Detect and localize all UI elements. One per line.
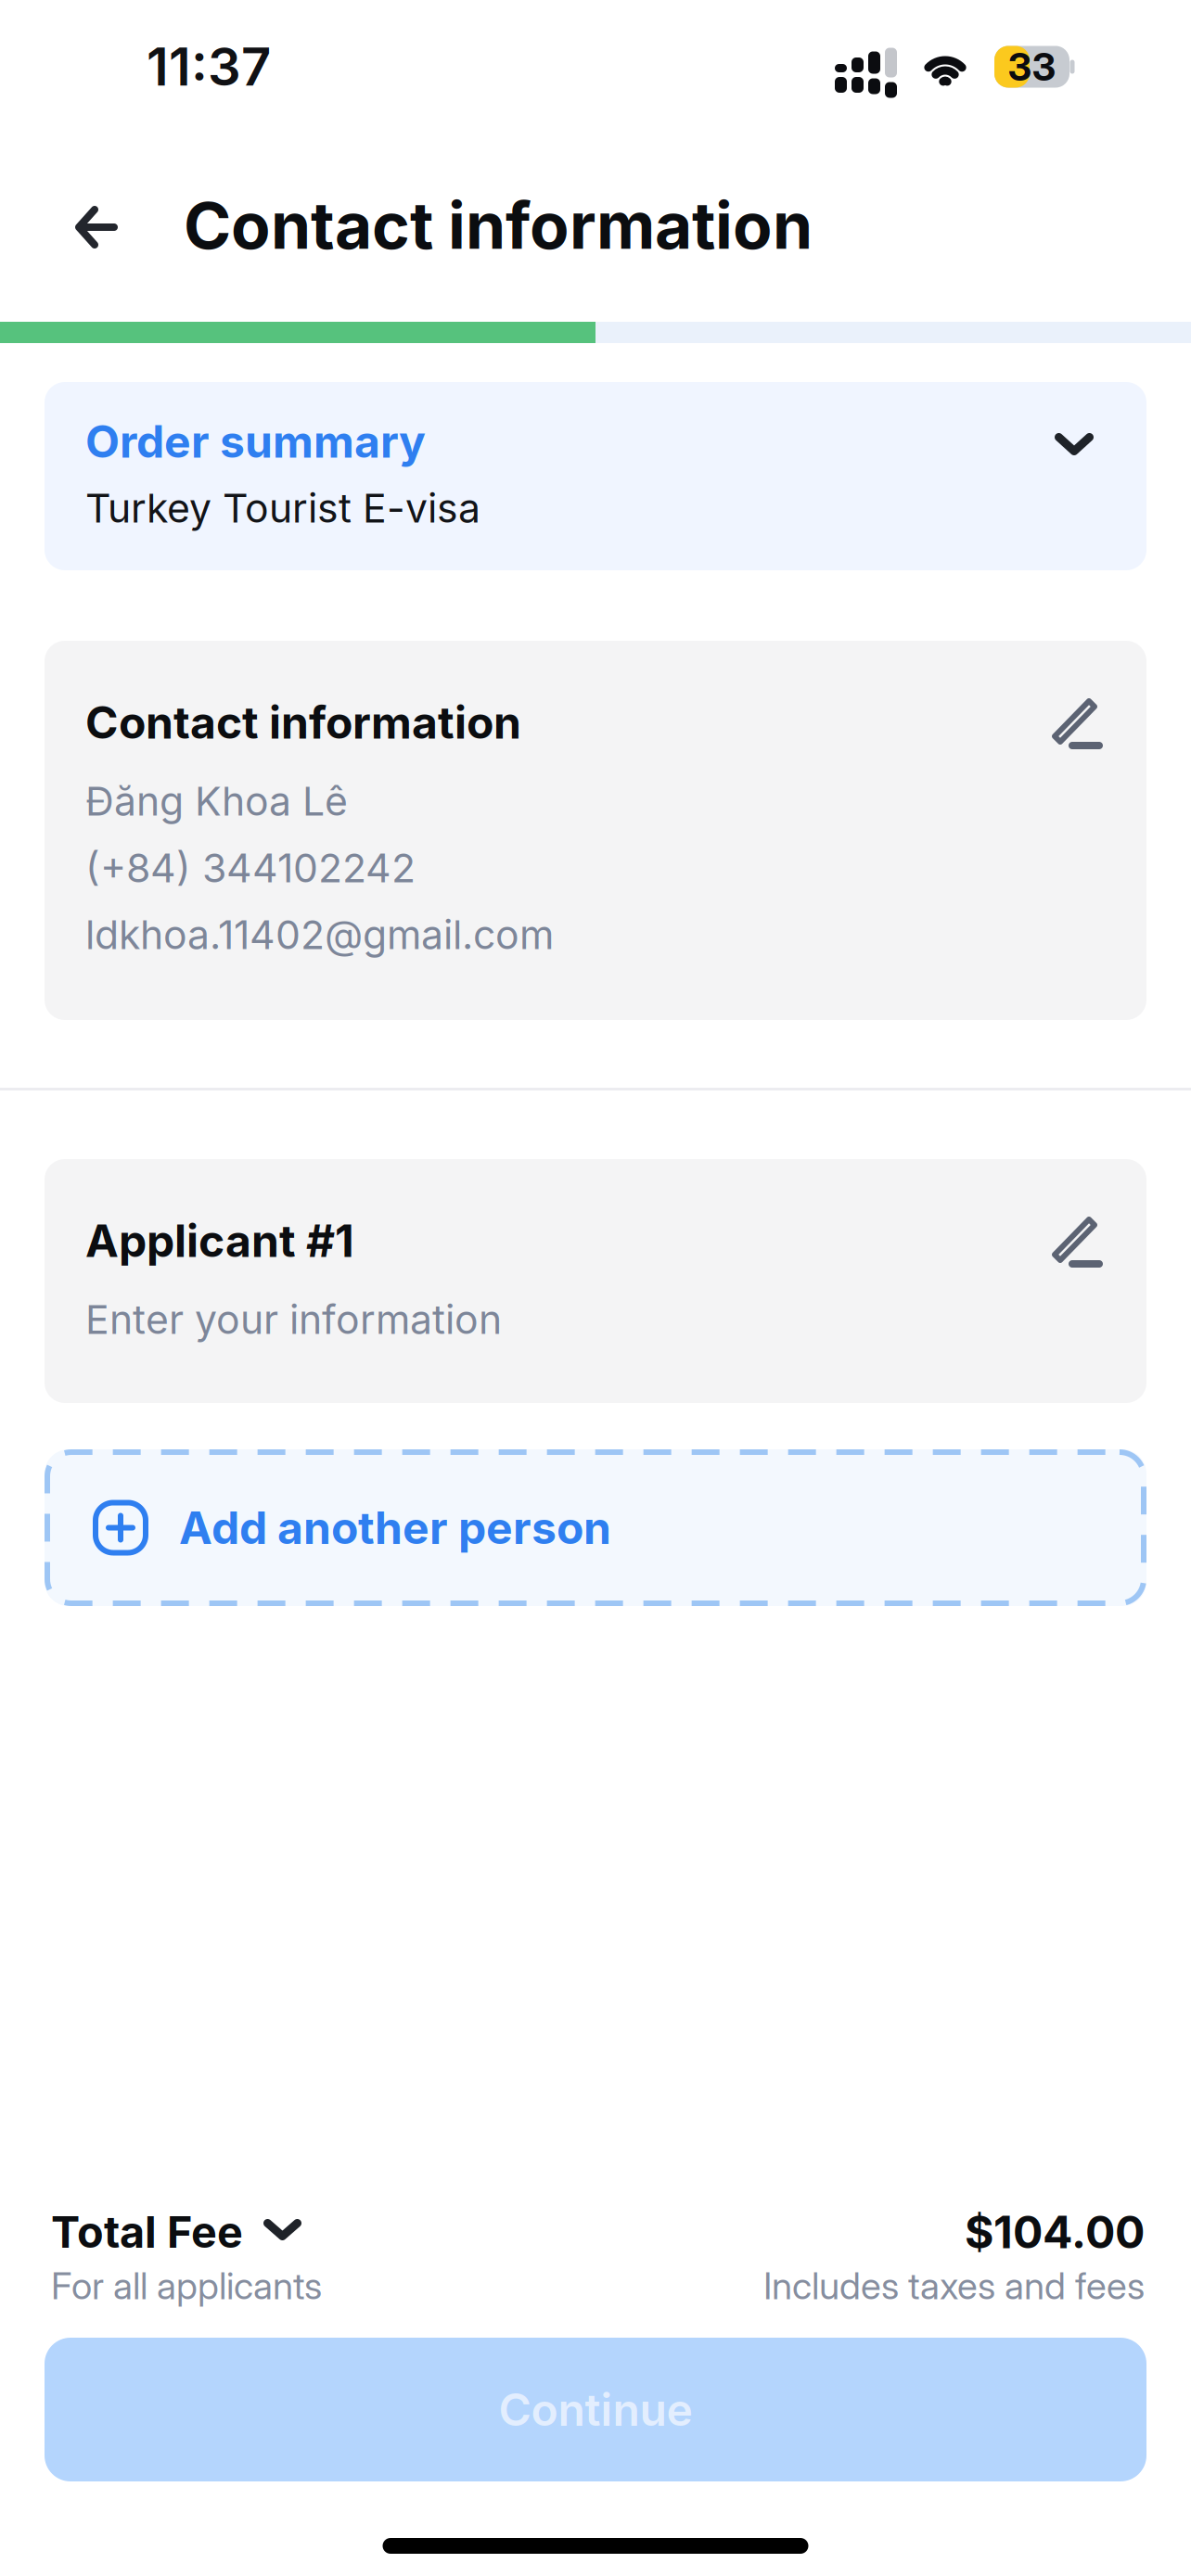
button[interactable]: Continue [45, 2338, 1146, 2481]
staticText: ldkhoa.11402@gmail.com [85, 911, 554, 959]
staticText: $104.00 [965, 2205, 1145, 2259]
staticText: For all applicants [51, 2263, 322, 2308]
staticText: Order summary [85, 414, 426, 468]
button[interactable]: Back [49, 174, 184, 276]
button[interactable]: Order summary [45, 382, 1146, 570]
staticText: Includes taxes and fees [763, 2263, 1145, 2308]
staticText: Contact information [184, 186, 813, 264]
staticText: Đăng Khoa Lê [85, 777, 348, 825]
staticText: Applicant #1 [85, 1214, 354, 1268]
staticText: Add another person [179, 1501, 611, 1555]
staticText: 33 [1008, 44, 1056, 90]
staticText: (+84) 344102242 [85, 844, 416, 892]
staticText: Contact information [85, 695, 521, 749]
button[interactable]: Edit contact information [1026, 692, 1106, 753]
button[interactable]: Edit applicant 1 [1026, 1210, 1106, 1271]
button[interactable]: Add another person [45, 1449, 1146, 1606]
staticText: Enter your information [85, 1296, 502, 1343]
staticText: Turkey Tourist E-visa [85, 484, 480, 532]
staticText: 11:37 [147, 35, 271, 98]
button[interactable]: Total Fee [51, 2206, 301, 2258]
staticText: Continue [499, 2383, 692, 2437]
staticText: Total Fee [51, 2206, 243, 2258]
